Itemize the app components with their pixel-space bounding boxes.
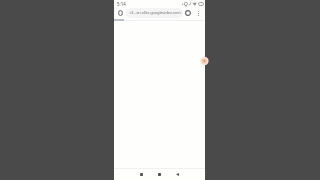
staticText: r3---sn-x0tx.googlevideo.com xyxy=(128,10,182,16)
button[interactable]: Home xyxy=(153,169,165,180)
button[interactable]: r3---sn-x0tx.googlevideo.com xyxy=(126,8,183,18)
button[interactable]: Page info xyxy=(115,8,125,18)
button[interactable]: Recent apps xyxy=(135,169,147,180)
staticText: 5:14 xyxy=(117,1,126,7)
button[interactable]: Back xyxy=(171,169,183,180)
button[interactable]: More options xyxy=(193,8,203,18)
button[interactable]: Stop loading page xyxy=(183,8,193,18)
